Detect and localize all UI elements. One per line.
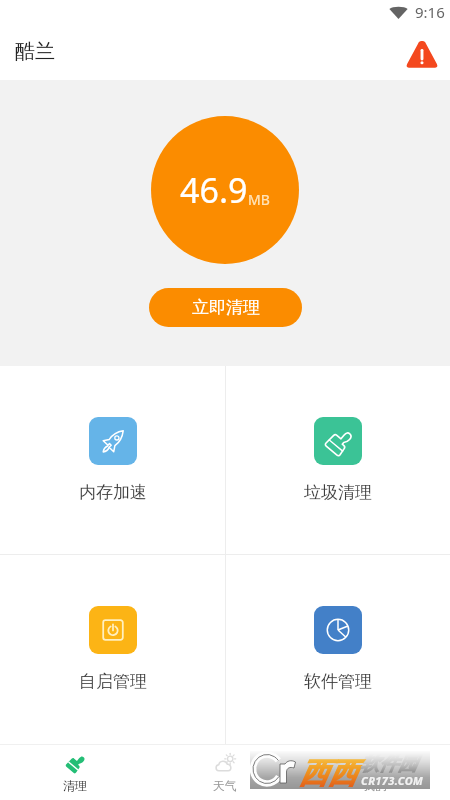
staticText: 软件管理 (304, 671, 372, 692)
staticText: CR173.COM (361, 773, 424, 788)
staticText: 9:16 (415, 2, 445, 22)
button[interactable]: 立即清理 (149, 288, 302, 327)
button[interactable]: 内存加速 (0, 366, 225, 554)
button[interactable]: 46.9 (151, 116, 299, 264)
button[interactable]: Warning (401, 33, 443, 75)
button[interactable]: 软件管理 (225, 555, 450, 744)
button[interactable]: 我的 (300, 745, 450, 800)
staticText: 立即清理 (192, 297, 260, 318)
staticText: 清理 (63, 778, 87, 793)
button[interactable]: 自启管理 (0, 555, 225, 744)
button[interactable]: 垃圾清理 (225, 366, 450, 554)
staticText: 软件园 (360, 752, 417, 776)
staticText: 垃圾清理 (304, 482, 372, 503)
staticText: 酷兰 (15, 39, 55, 64)
staticText: 自启管理 (79, 671, 147, 692)
staticText: MB (248, 190, 270, 209)
staticText: 西西 (299, 755, 357, 792)
staticText: 我的 (363, 778, 387, 793)
staticText: 天气 (213, 778, 237, 793)
staticText: 内存加速 (79, 482, 147, 503)
button[interactable]: 天气 (150, 745, 300, 800)
button[interactable]: 清理 (0, 745, 150, 800)
staticText: 46.9 (180, 167, 248, 213)
